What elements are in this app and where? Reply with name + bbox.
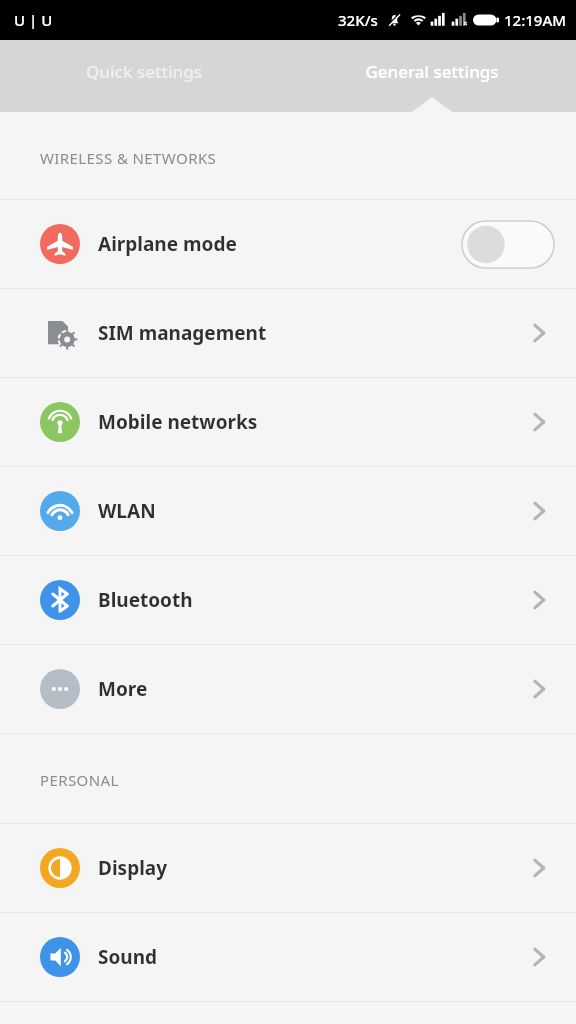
staticText: Mobile networks [98, 409, 502, 435]
staticText: Quick settings [86, 60, 202, 83]
button[interactable]: More [0, 645, 576, 733]
staticText: Airplane mode [98, 231, 439, 257]
button[interactable]: Airplane mode toggle [462, 221, 554, 268]
staticText: Bluetooth [98, 587, 502, 613]
staticText: SIM management [98, 320, 502, 346]
staticText: WLAN [98, 498, 502, 524]
staticText: Sound [98, 944, 502, 970]
button[interactable]: Bluetooth [0, 556, 576, 644]
staticText: WIRELESS & NETWORKS [40, 148, 217, 168]
staticText: 32K/s [338, 10, 378, 30]
button[interactable]: Mobile networks [0, 378, 576, 466]
staticText: U | U [14, 10, 53, 30]
button[interactable]: Quick settings [0, 40, 288, 112]
staticText: General settings [365, 60, 499, 83]
button[interactable]: WLAN [0, 467, 576, 555]
button[interactable]: Sound [0, 913, 576, 1001]
staticText: 12:19AM [504, 10, 566, 30]
button[interactable]: Display [0, 824, 576, 912]
button[interactable]: Airplane mode [0, 200, 576, 288]
staticText: More [98, 676, 502, 702]
staticText: PERSONAL [40, 770, 119, 790]
button[interactable]: SIM management [0, 289, 576, 377]
staticText: Display [98, 855, 502, 881]
button[interactable]: General settings [288, 40, 576, 112]
